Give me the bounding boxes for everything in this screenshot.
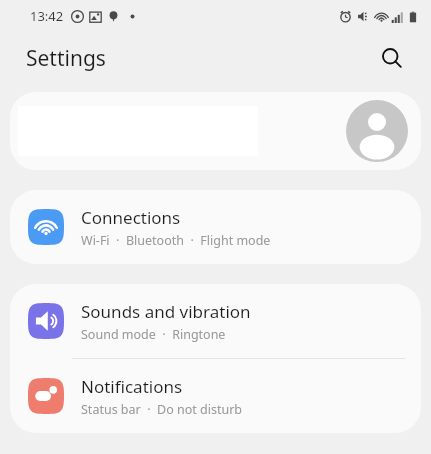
- button[interactable]: Sounds and vibration: [10, 284, 421, 358]
- button[interactable]: Connections: [10, 190, 421, 264]
- staticText: Connections: [81, 206, 181, 229]
- staticText: Sound mode · Ringtone: [81, 326, 226, 343]
- button[interactable]: Search: [373, 39, 411, 77]
- staticText: Status bar · Do not disturb: [81, 401, 243, 418]
- staticText: Sounds and vibration: [81, 300, 251, 323]
- button[interactable]: Notifications: [10, 359, 421, 433]
- button[interactable]: [10, 92, 421, 170]
- staticText: Settings: [26, 44, 106, 73]
- staticText: 13:42: [30, 7, 64, 25]
- staticText: Notifications: [81, 375, 183, 398]
- staticText: Wi-Fi · Bluetooth · Flight mode: [81, 232, 271, 249]
